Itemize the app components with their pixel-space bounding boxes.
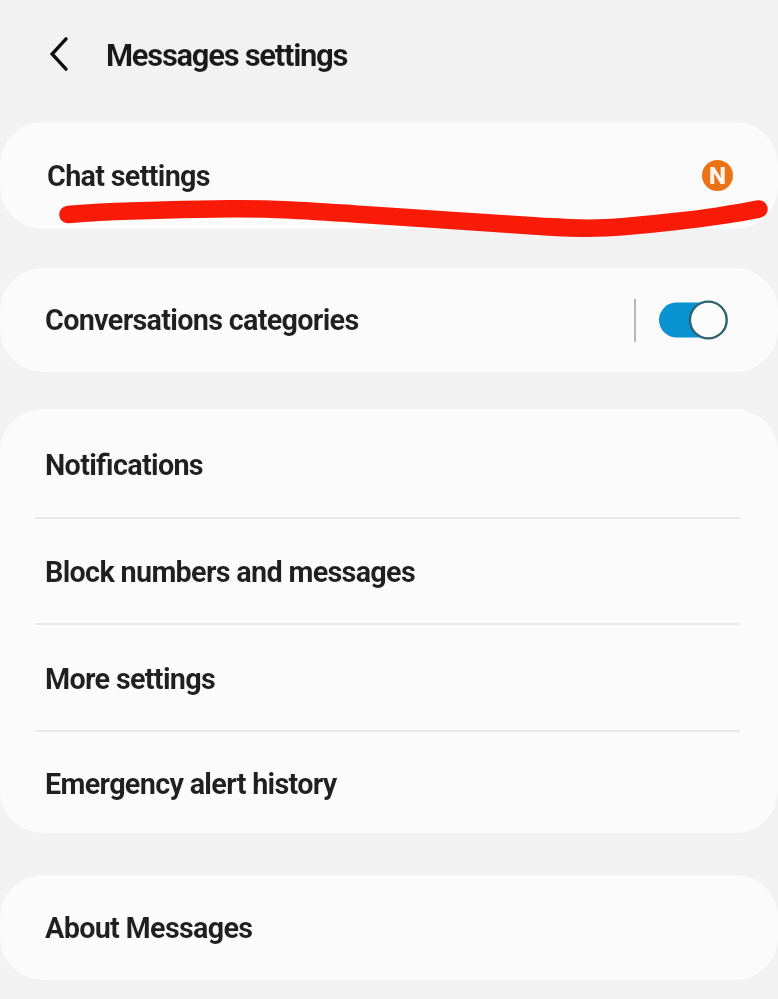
- staticText: Block numbers and messages: [45, 555, 416, 589]
- staticText: More settings: [45, 662, 216, 696]
- button[interactable]: Conversations categories: [0, 268, 633, 372]
- staticText: Chat settings: [47, 159, 210, 193]
- button[interactable]: Notifications: [0, 409, 778, 518]
- staticText: Notifications: [45, 448, 203, 482]
- staticText: Messages settings: [106, 37, 348, 73]
- staticText: Emergency alert history: [45, 767, 337, 801]
- button[interactable]: Navigate up: [25, 30, 73, 78]
- button[interactable]: Chat settings: [0, 122, 778, 229]
- staticText: N: [709, 162, 726, 190]
- button[interactable]: More settings: [0, 624, 778, 731]
- staticText: About Messages: [45, 911, 253, 945]
- button[interactable]: Conversations categories, on: [645, 268, 778, 372]
- staticText: Conversations categories: [45, 303, 359, 337]
- button[interactable]: About Messages: [0, 875, 778, 980]
- button[interactable]: Emergency alert history: [0, 731, 778, 833]
- button[interactable]: Block numbers and messages: [0, 518, 778, 624]
